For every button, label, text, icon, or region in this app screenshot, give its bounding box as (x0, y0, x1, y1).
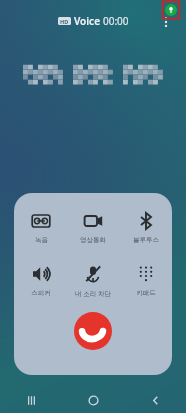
staticText: 블루투스 (133, 236, 159, 244)
button[interactable]: 스피커 (15, 262, 67, 299)
button[interactable]: End call (74, 312, 112, 350)
staticText: 키패드 (136, 289, 156, 297)
button[interactable]: 영상통화 (67, 209, 119, 246)
button[interactable]: 내 소리 차단 (67, 262, 119, 300)
staticText: 녹음 (35, 236, 48, 244)
staticText: Voice (74, 14, 100, 28)
button[interactable]: 블루투스 (120, 209, 172, 246)
button[interactable]: 녹음 (15, 209, 67, 246)
button[interactable]: Home (62, 387, 124, 413)
button[interactable]: More options (154, 10, 178, 34)
staticText: HD (60, 18, 69, 25)
button[interactable]: Recents (0, 387, 62, 413)
staticText: 00:00 (103, 14, 129, 28)
staticText: 스피커 (31, 289, 51, 297)
button[interactable]: 키패드 (120, 262, 172, 299)
staticText: 영상통화 (80, 236, 106, 244)
staticText: 내 소리 차단 (75, 289, 111, 298)
button[interactable]: Recording indicator (162, 1, 180, 19)
button[interactable]: Back (124, 387, 186, 413)
